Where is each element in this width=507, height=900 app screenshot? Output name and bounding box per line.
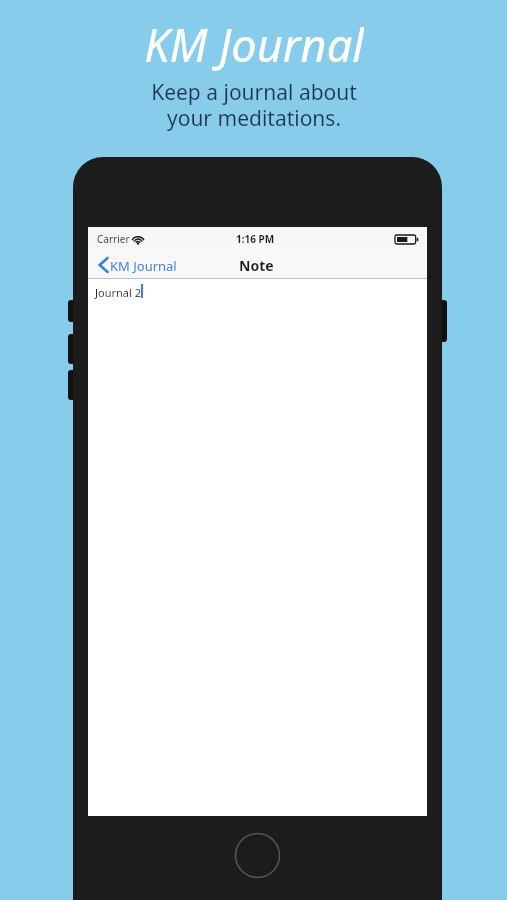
other: Back (99, 258, 108, 272)
button[interactable]: Back (96, 251, 188, 279)
staticText: Journal 2 (95, 285, 141, 300)
staticText: Keep a journal about your meditations. (151, 78, 357, 133)
staticText: KM Journal (110, 257, 177, 275)
staticText: KM Journal (144, 14, 364, 72)
button[interactable]: Journal 2 (88, 279, 427, 816)
staticText: Carrier (97, 232, 130, 246)
button[interactable]: Home (234, 832, 281, 879)
staticText: Note (239, 256, 274, 275)
staticText: 1:16 PM (236, 232, 275, 246)
